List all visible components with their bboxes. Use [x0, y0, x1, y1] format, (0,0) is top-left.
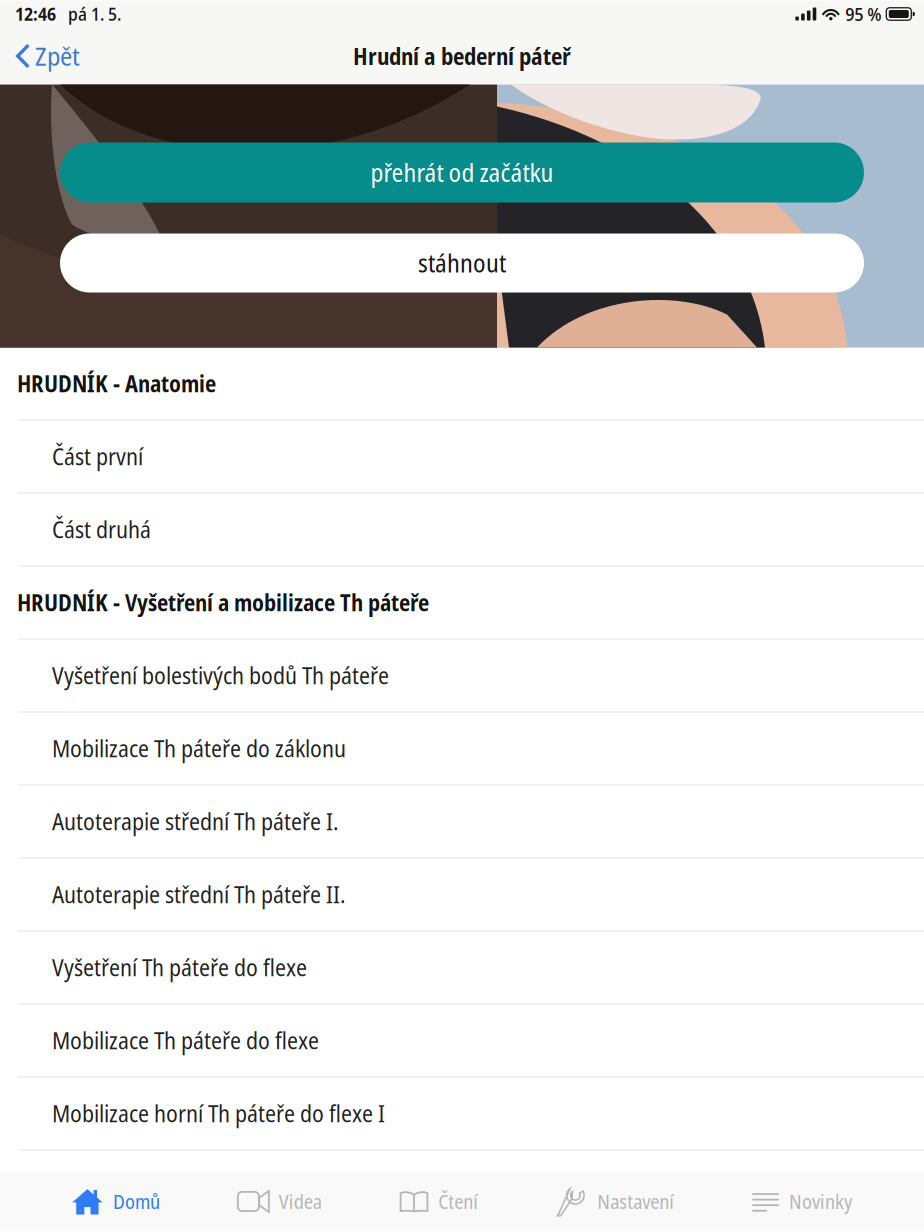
button[interactable]: Část druhá	[0, 493, 924, 565]
button[interactable]: Vyšetření bolestivých bodů Th páteře	[0, 639, 924, 711]
staticText: Domů	[113, 1188, 160, 1215]
staticText: Vyšetření bolestivých bodů Th páteře	[52, 660, 389, 691]
button[interactable]: Mobilizace horní Th páteře do flexe I	[0, 1077, 924, 1149]
button[interactable]: Mobilizace horní Th páteře do flexe II	[0, 1150, 924, 1222]
button[interactable]: Novinky	[746, 1174, 858, 1228]
button[interactable]: Mobilizace Th páteře do záklonu	[0, 712, 924, 784]
staticText: HRUDNÍK - Anatomie	[17, 368, 216, 399]
staticText: Část první	[52, 441, 143, 472]
staticText: 95 %	[845, 2, 881, 26]
button[interactable]: Domů	[66, 1174, 166, 1228]
staticText: stáhnout	[418, 246, 506, 280]
button[interactable]: Mobilizace Th páteře do flexe	[0, 1004, 924, 1076]
staticText: přehrát od začátku	[370, 156, 553, 189]
button[interactable]: stáhnout	[60, 233, 864, 292]
staticText: Část druhá	[52, 514, 151, 545]
staticText: Vyšetření Th páteře do flexe	[52, 952, 307, 983]
staticText: Čtení	[438, 1188, 478, 1215]
staticText: Videa	[279, 1188, 322, 1215]
staticText: Hrudní a bederní páteř	[353, 40, 571, 72]
button[interactable]: Videa	[232, 1174, 328, 1228]
button[interactable]: Zpět	[0, 32, 92, 80]
staticText: Autoterapie střední Th páteře II.	[52, 879, 346, 910]
staticText: Autoterapie střední Th páteře I.	[52, 806, 339, 837]
staticText: Mobilizace Th páteře do flexe	[52, 1025, 319, 1056]
button[interactable]: Vyšetření Th páteře do flexe	[0, 931, 924, 1003]
button[interactable]: Autoterapie střední Th páteře II.	[0, 858, 924, 930]
staticText: Mobilizace horní Th páteře do flexe II	[52, 1171, 392, 1202]
button[interactable]: Nastavení	[550, 1174, 680, 1228]
staticText: HRUDNÍK - Vyšetření a mobilizace Th páte…	[17, 587, 429, 618]
button[interactable]: Část první	[0, 420, 924, 492]
staticText: 12:46	[15, 2, 56, 26]
staticText: Mobilizace horní Th páteře do flexe I	[52, 1098, 385, 1129]
button[interactable]: Čtení	[394, 1174, 484, 1228]
staticText: Nastavení	[597, 1188, 674, 1215]
staticText: pá 1. 5.	[56, 2, 121, 26]
staticText: Zpět	[35, 39, 80, 73]
button[interactable]: přehrát od začátku	[60, 142, 864, 202]
button[interactable]: Autoterapie střední Th páteře I.	[0, 785, 924, 857]
staticText: Novinky	[789, 1188, 852, 1215]
staticText: Mobilizace Th páteře do záklonu	[52, 733, 346, 764]
